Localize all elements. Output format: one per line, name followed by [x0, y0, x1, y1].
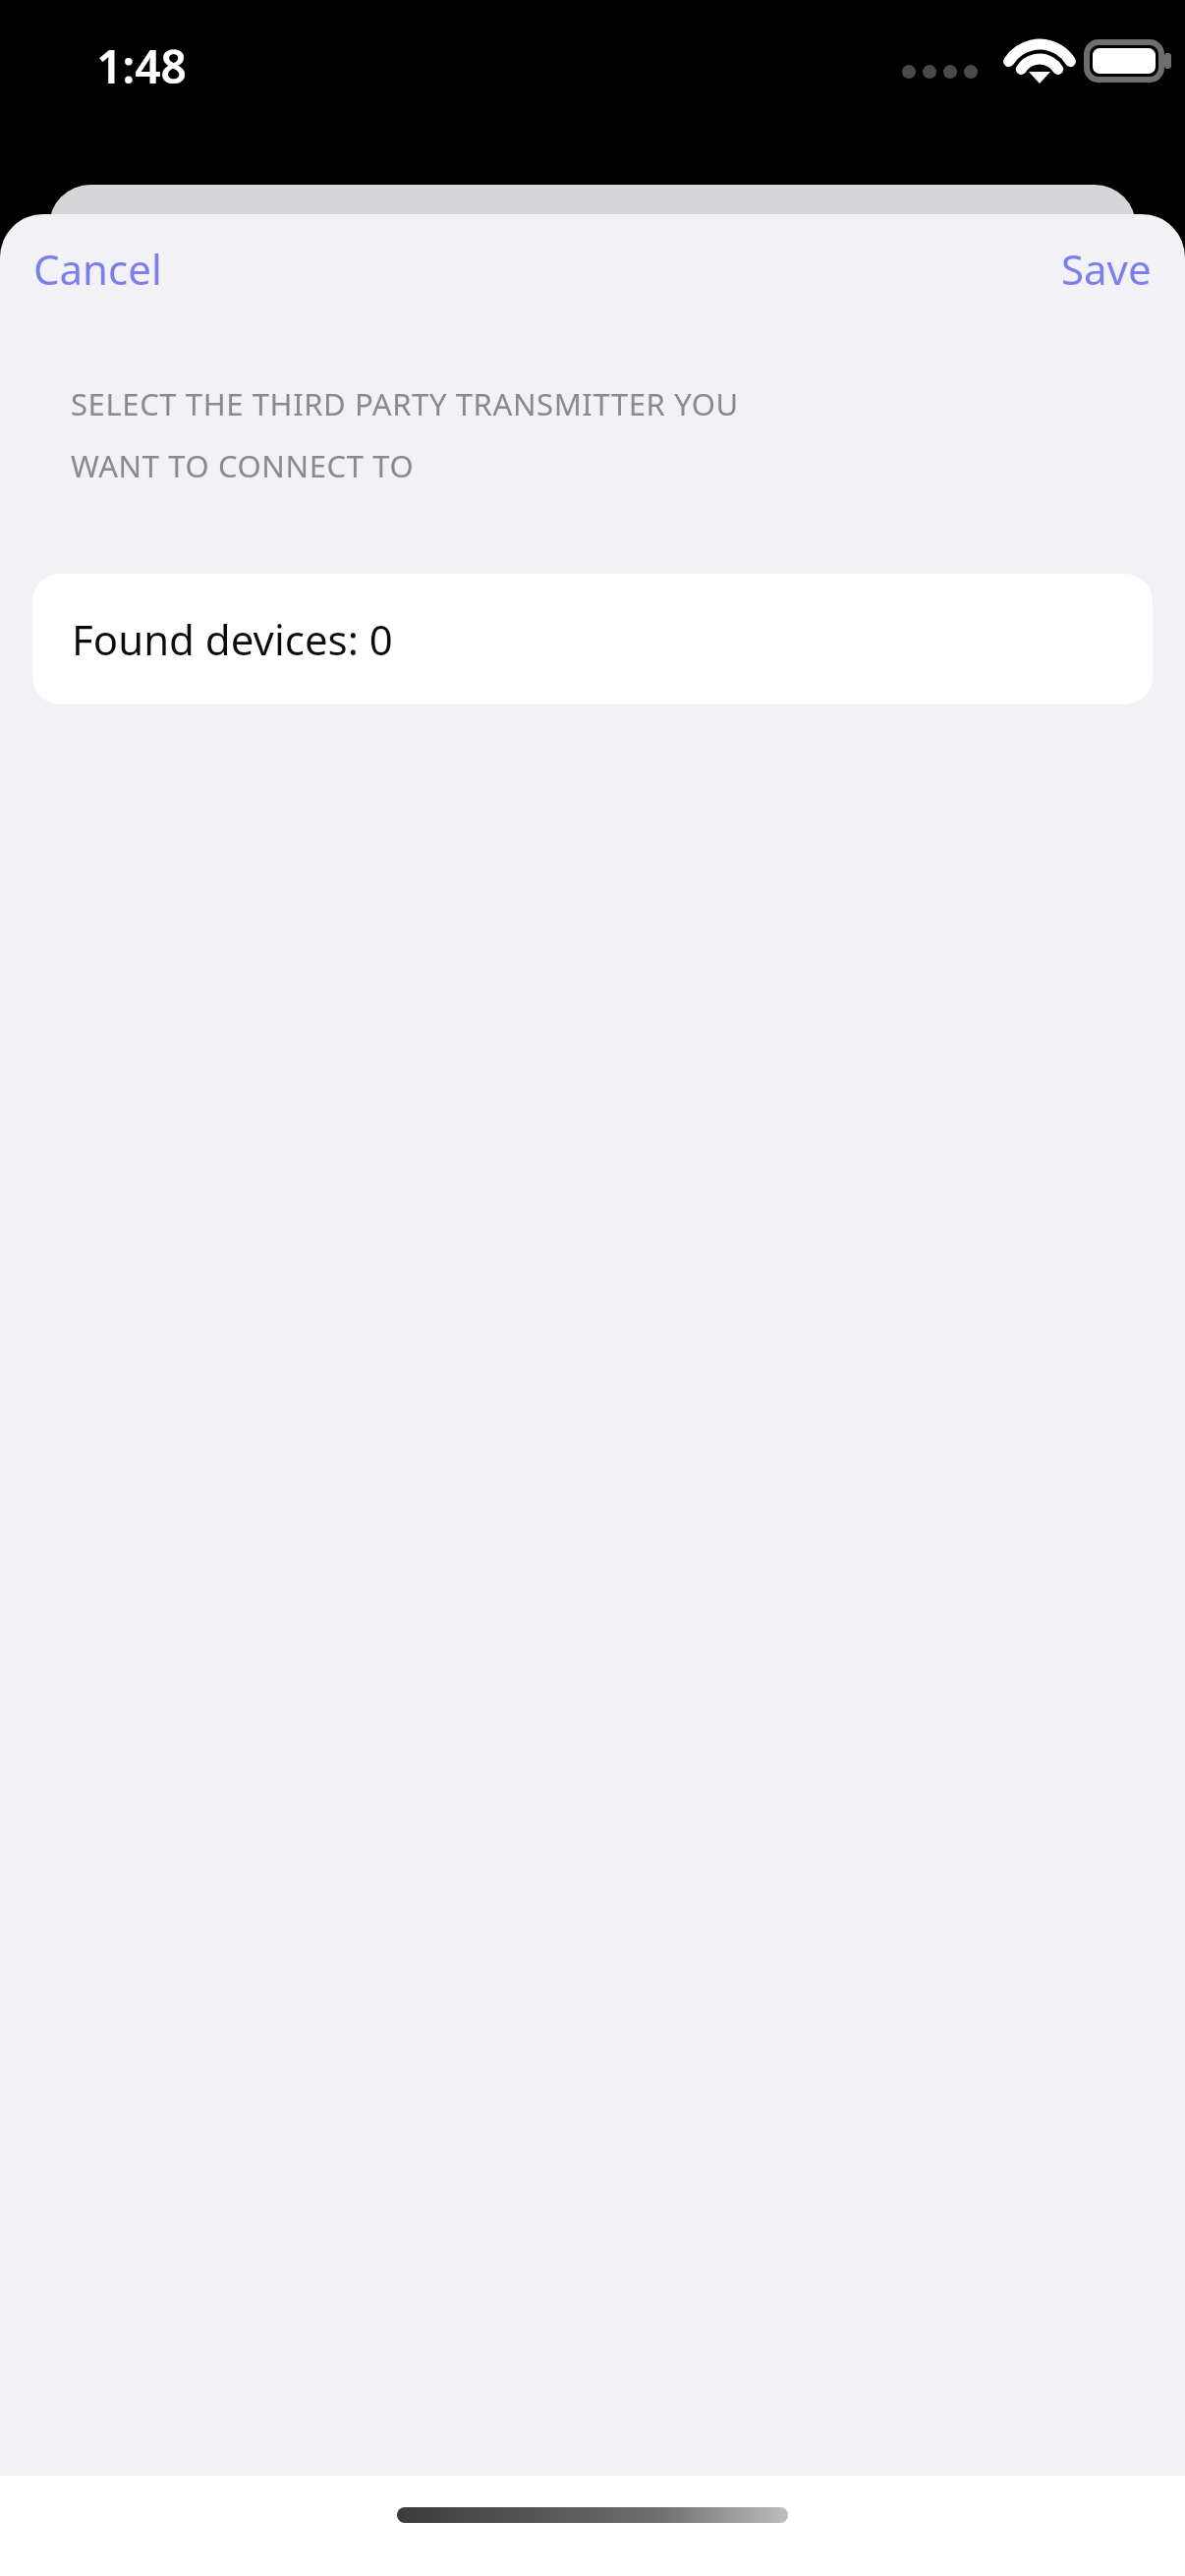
button[interactable]: Cancel [16, 229, 180, 308]
staticText: SELECT THE THIRD PARTY TRANSMITTER YOU W… [71, 383, 739, 487]
staticText: Found devices: 0 [72, 611, 393, 667]
staticText: Cancel [33, 241, 162, 297]
staticText: 1:48 [96, 35, 187, 97]
button[interactable]: Save [1044, 229, 1169, 308]
button[interactable]: Found devices: 0 [32, 574, 1153, 704]
staticText: Save [1061, 241, 1152, 297]
